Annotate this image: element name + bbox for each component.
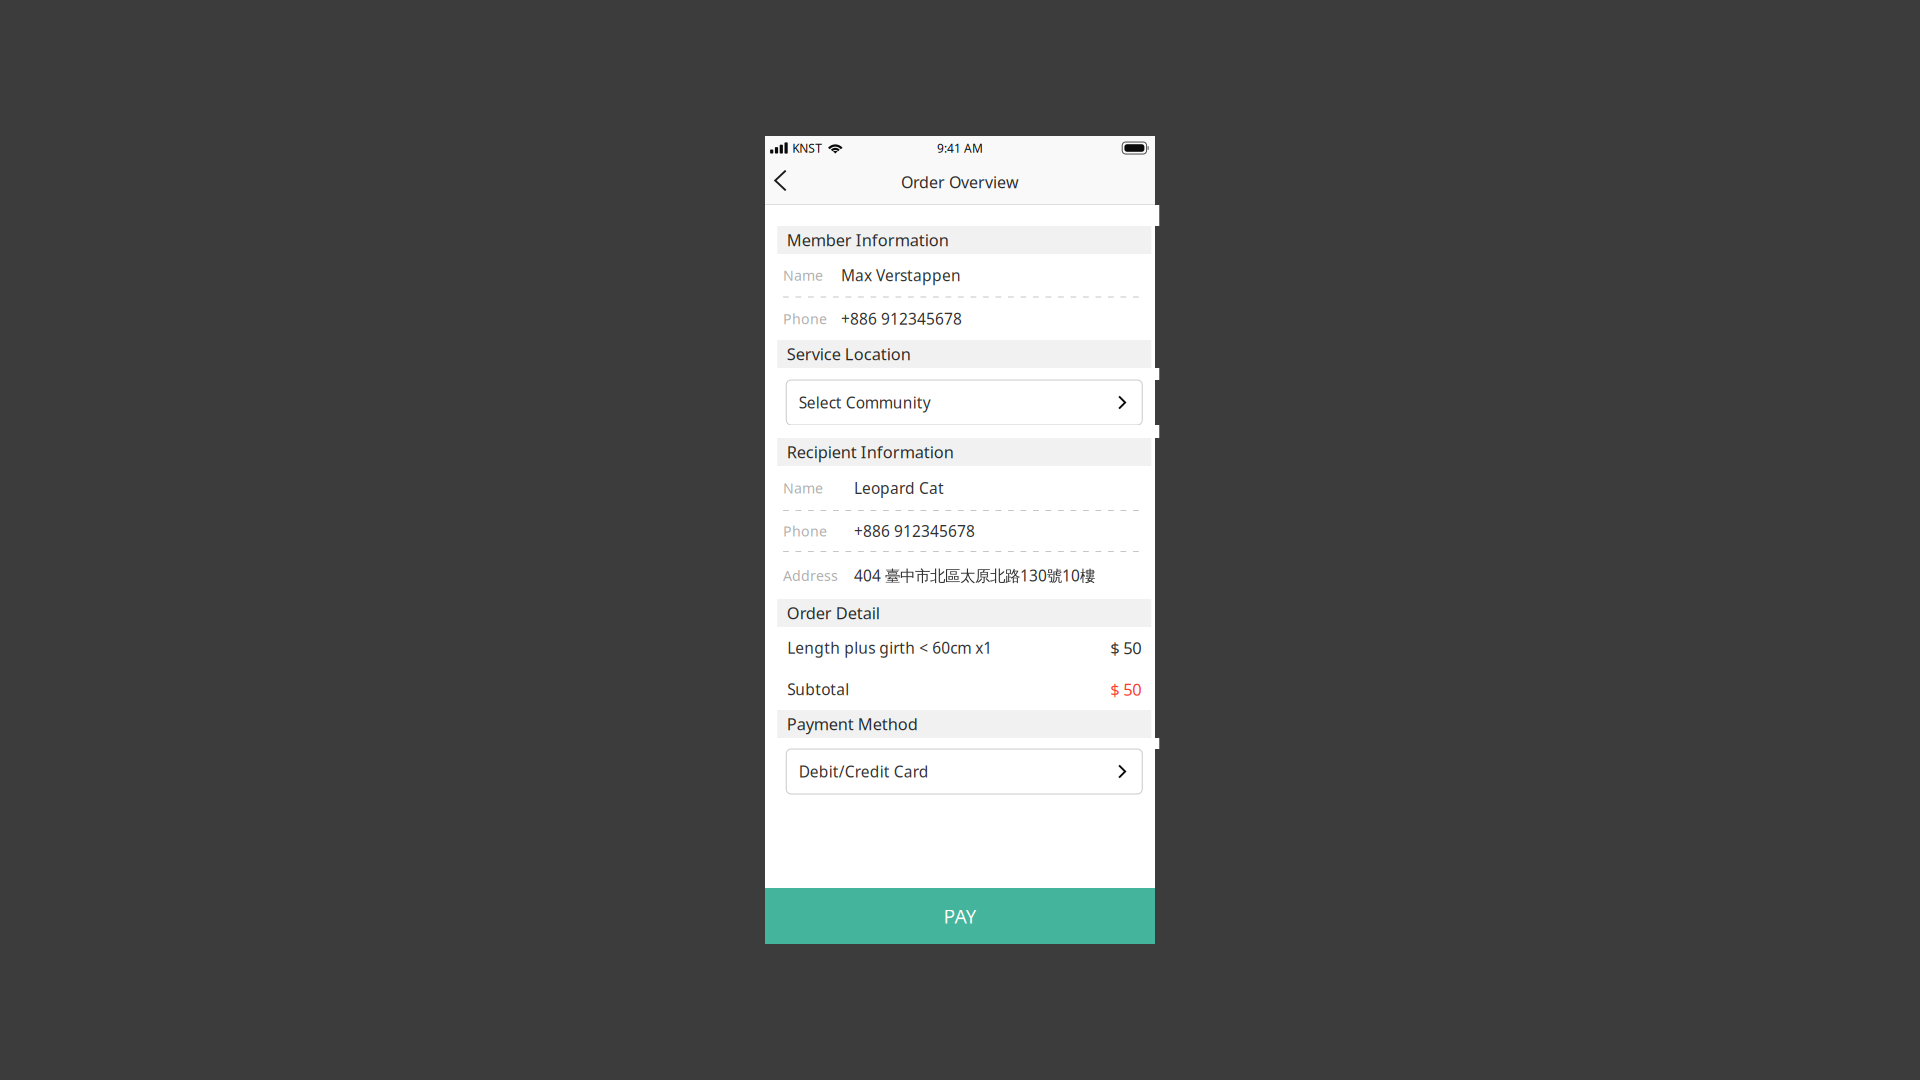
staticText: Order Detail [787,602,880,624]
button[interactable]: Select Community [769,380,1159,425]
staticText: Payment Method [787,713,918,735]
staticText: Select Community [799,392,931,413]
staticText: $ 50 [1110,636,1141,659]
staticText: KNST [792,140,822,156]
staticText: 404 臺中市北區太原北路130號10樓 [854,565,1095,586]
staticText: Phone [783,309,827,328]
staticText: Length plus girth < 60cm x1 [787,637,992,658]
staticText: +886 912345678 [841,308,962,329]
button[interactable]: Back [765,160,802,204]
staticText: Name [783,266,823,285]
staticText: Debit/Credit Card [799,761,929,782]
staticText: Service Location [787,343,911,365]
staticText: Leopard Cat [854,477,944,499]
staticText: +886 912345678 [854,520,975,542]
staticText: PAY [943,903,976,929]
staticText: Phone [783,521,827,541]
staticText: Address [783,566,838,585]
staticText: Subtotal [787,679,849,700]
staticText: Order Overview [901,171,1019,193]
staticText: Name [783,478,823,498]
staticText: Recipient Information [787,441,954,463]
staticText: $ 50 [1110,678,1141,700]
staticText: Member Information [787,229,949,251]
staticText: 9:41 AM [937,140,983,156]
button[interactable]: Debit/Credit Card [769,749,1159,794]
staticText: Max Verstappen [841,265,961,286]
button[interactable]: PAY [765,888,1155,944]
